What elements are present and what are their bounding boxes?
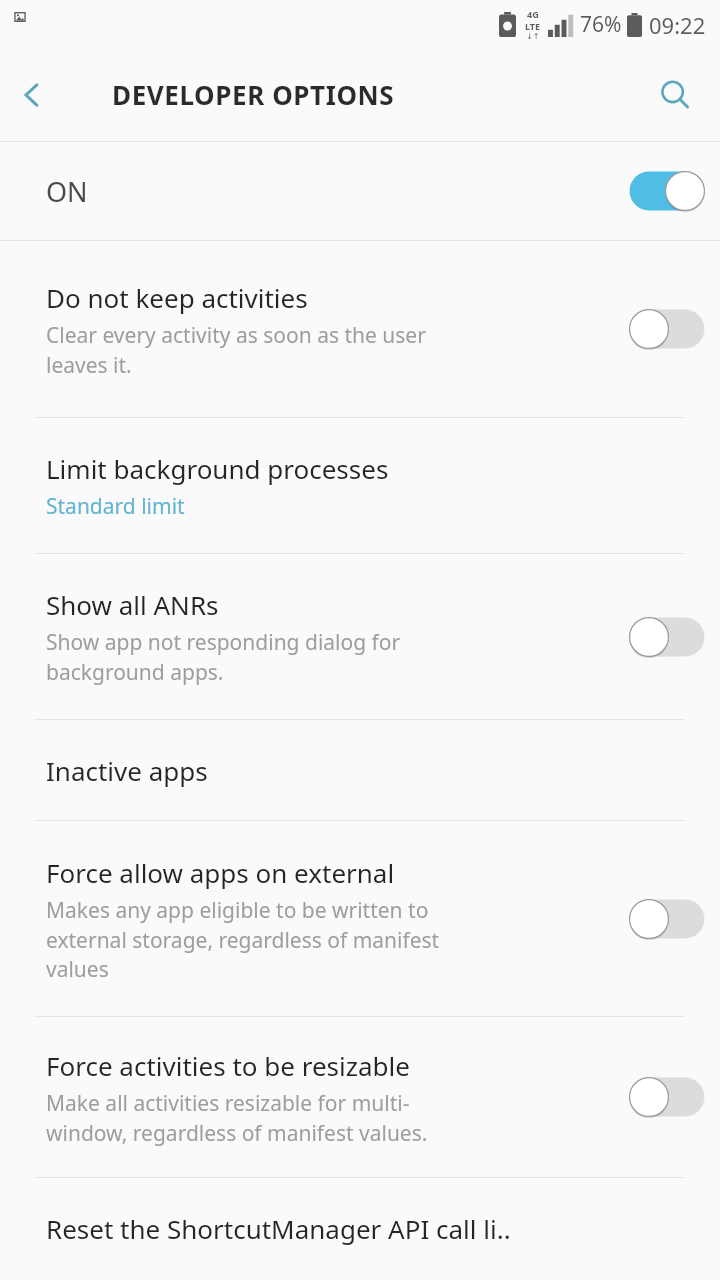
staticText: Make all activities resizable for multi-… [46,1089,428,1147]
staticText: Inactive apps [46,753,208,788]
button[interactable] [628,892,706,946]
staticText: LTE [525,20,541,32]
staticText: Clear every activity as soon as the user… [46,321,426,379]
button[interactable] [628,610,706,664]
button[interactable] [628,1070,706,1124]
staticText: DEVELOPER OPTIONS [112,77,395,112]
button[interactable]: Search [644,64,706,126]
staticText: Show app not responding dialog for backg… [46,628,401,686]
staticText: Force allow apps on external [46,855,395,890]
staticText: Force activities to be resizable [46,1048,410,1083]
button[interactable]: Force activities to be resizable [0,1017,720,1177]
button[interactable]: Back [0,63,64,127]
staticText: Show all ANRs [46,587,219,622]
staticText: Reset the ShortcutManager API call li.. [46,1211,511,1246]
staticText: Limit background processes [46,451,389,486]
staticText: Standard limit [46,492,185,521]
button[interactable]: Reset the ShortcutManager API call li.. [0,1178,720,1278]
button[interactable]: Inactive apps [0,720,720,820]
button[interactable]: Do not keep activities [0,241,720,417]
staticText: Do not keep activities [46,280,308,315]
staticText: ON [46,173,628,210]
button[interactable] [628,164,706,218]
staticText: ↓↑ [526,32,540,41]
button[interactable]: Show all ANRs [0,554,720,719]
button[interactable] [628,302,706,356]
button[interactable]: Limit background processes [0,418,720,553]
button[interactable]: ON [0,142,720,240]
staticText: 09:22 [649,10,706,40]
button[interactable]: Force allow apps on external [0,821,720,1016]
staticText: 76% [580,10,622,39]
staticText: Makes any app eligible to be written to … [46,896,440,983]
staticText: 4G [527,8,539,20]
